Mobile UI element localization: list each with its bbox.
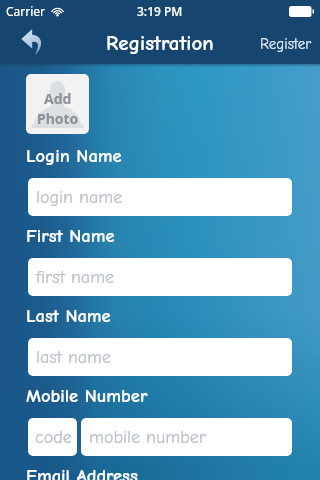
staticText: last name [36,347,112,368]
button[interactable]: Add [26,74,89,134]
staticText: Mobile Number [26,385,148,406]
button[interactable]: Register [260,35,312,52]
staticText: Login Name [26,145,122,166]
staticText: login name [36,187,123,208]
button[interactable]: first name [28,258,292,296]
staticText: Registration [106,31,214,55]
staticText: mobile number [89,427,206,448]
button[interactable]: last name [28,338,292,376]
staticText: Register [260,35,312,52]
button[interactable]: login name [28,178,292,216]
staticText: first name [36,267,115,288]
staticText: Carrier [6,3,46,19]
staticText: code [35,427,72,448]
button[interactable]: Back [7,25,43,61]
button[interactable]: code [28,418,77,456]
staticText: Email Address [26,465,138,480]
button[interactable]: mobile number [81,418,292,456]
staticText: Last Name [26,305,111,326]
staticText: First Name [26,225,115,246]
staticText: Add [44,89,72,108]
staticText: Photo [37,109,79,128]
staticText: 3:19 PM [137,3,183,19]
